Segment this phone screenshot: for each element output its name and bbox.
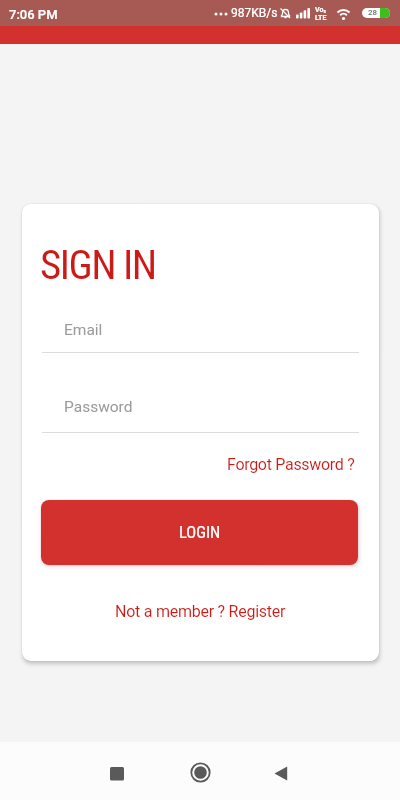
button[interactable] (42, 390, 359, 434)
staticText: Password (64, 398, 133, 416)
button[interactable] (271, 763, 291, 783)
button[interactable] (42, 312, 359, 354)
staticText: Not a member ? Register (115, 602, 286, 621)
staticText: Forgot Password ? (227, 455, 355, 474)
staticText: 987KB/s (231, 6, 278, 20)
staticText: 7:06 PM (9, 7, 58, 22)
button[interactable]: Not a member ? Register (115, 602, 286, 621)
button[interactable] (189, 761, 211, 783)
staticText: LTE (315, 14, 327, 22)
staticText: SIGN IN (40, 241, 156, 289)
staticText: LOGIN (179, 523, 221, 542)
button[interactable]: LOGIN (41, 500, 358, 565)
button[interactable] (106, 763, 128, 785)
staticText: Vo₅ (315, 6, 326, 14)
staticText: Email (64, 321, 103, 339)
staticText: 28 (368, 8, 378, 17)
button[interactable]: Forgot Password ? (227, 455, 355, 474)
